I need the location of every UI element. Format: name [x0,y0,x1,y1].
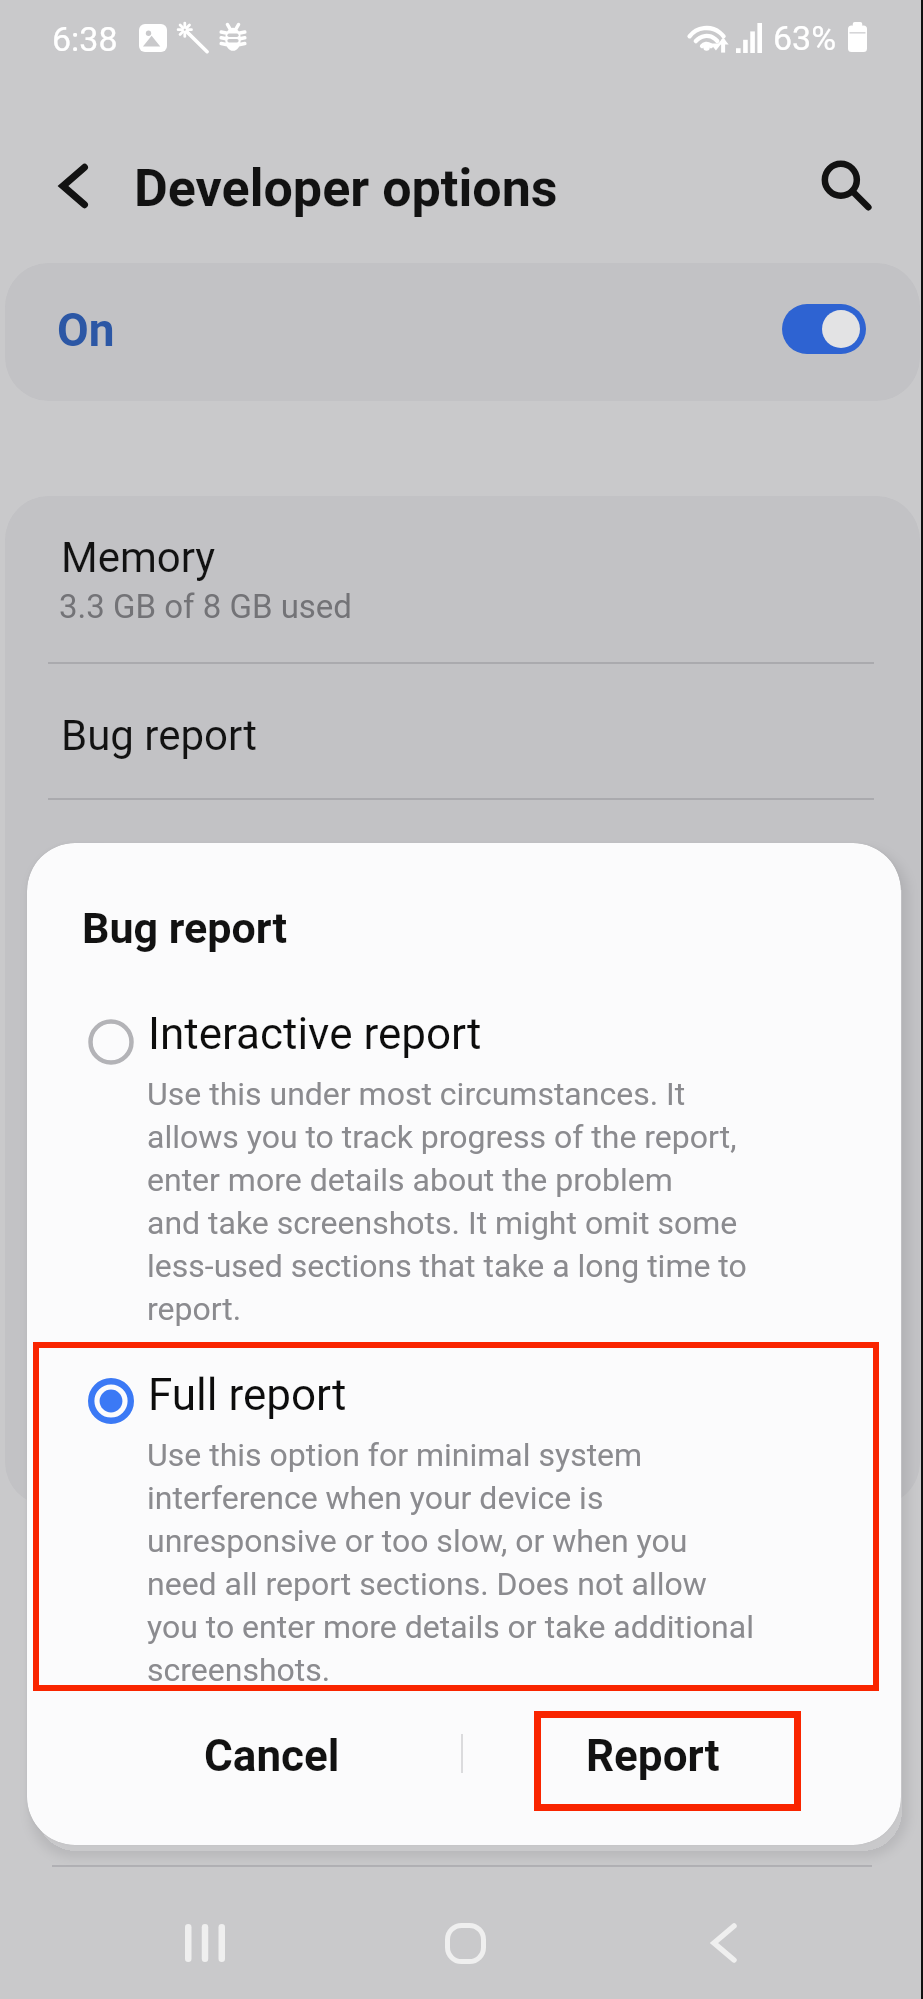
button[interactable]: Home [415,1893,515,1993]
staticText: Developer options [134,158,558,219]
button[interactable]: Recent apps [155,1893,255,1993]
button[interactable]: Back [674,1893,774,1993]
staticText: Report [586,1730,720,1782]
staticText: 6:38 [52,19,118,59]
staticText: Bug report [61,711,257,760]
staticText: Use this option for minimal system inter… [147,1432,754,1690]
button[interactable]: Interactive report [27,999,901,1351]
staticText: On [57,303,115,357]
button[interactable]: Navigate up [36,145,118,227]
staticText: 3.3 GB of 8 GB used [59,587,352,626]
button[interactable]: On [5,263,920,401]
staticText: Interactive report [148,1008,482,1060]
staticText: Cancel [204,1730,340,1782]
button[interactable]: Report [462,1706,843,1840]
button[interactable]: Search [804,145,886,227]
staticText: Use this under most circumstances. It al… [147,1071,747,1329]
staticText: 63% [773,18,837,58]
button[interactable]: Full report [27,1360,901,1712]
staticText: Memory [61,533,216,582]
staticText: Full report [148,1369,347,1421]
button[interactable]: Cancel [81,1706,462,1840]
staticText: Bug report [82,903,288,953]
